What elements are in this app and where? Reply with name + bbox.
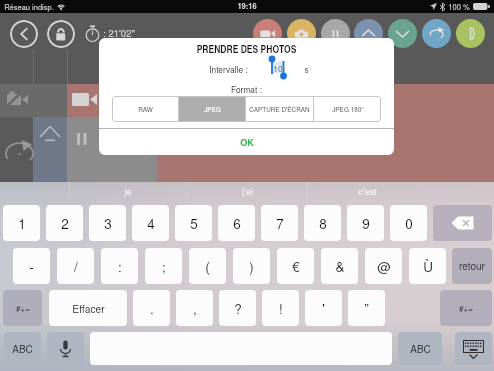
- button[interactable]: RAW: [112, 96, 178, 122]
- button[interactable]: ABC: [4, 332, 41, 365]
- button[interactable]: ”: [348, 290, 385, 326]
- staticText: 8: [319, 214, 327, 233]
- staticText: 6: [233, 214, 241, 233]
- button[interactable]: 9: [347, 205, 384, 241]
- staticText: 5: [190, 214, 198, 233]
- button[interactable]: 4: [132, 205, 169, 241]
- staticText: je: [124, 185, 132, 198]
- staticText: Ù: [423, 257, 433, 276]
- staticText: 0: [405, 214, 413, 233]
- staticText: ): [249, 257, 254, 276]
- staticText: ABC: [410, 342, 431, 356]
- button[interactable]: 7: [261, 205, 298, 241]
- staticText: Effacer: [72, 301, 105, 316]
- button[interactable]: Hide keyboard: [455, 332, 492, 365]
- button[interactable]: JPEG 180°: [314, 96, 381, 122]
- staticText: Format :: [99, 83, 394, 95]
- staticText: 19:16: [237, 1, 257, 12]
- staticText: €: [292, 257, 300, 276]
- staticText: j'ai: [242, 185, 253, 198]
- button[interactable]: ?: [219, 290, 256, 326]
- staticText: -: [29, 257, 34, 276]
- button[interactable]: Effacer: [49, 290, 127, 326]
- button[interactable]: &: [321, 248, 358, 284]
- staticText: ': [322, 299, 325, 318]
- staticText: /: [74, 257, 78, 276]
- staticText: 7: [276, 214, 284, 233]
- button[interactable]: ABC: [398, 332, 442, 365]
- staticText: 3: [104, 214, 112, 233]
- staticText: Intervalle :: [209, 63, 248, 75]
- staticText: OK: [240, 136, 254, 149]
- staticText: c'est: [358, 185, 377, 198]
- button[interactable]: 8: [304, 205, 341, 241]
- button[interactable]: OK: [99, 129, 394, 155]
- button[interactable]: Move up: [354, 19, 383, 48]
- button[interactable]: 3: [89, 205, 126, 241]
- button[interactable]: Night mode: [456, 19, 485, 48]
- button[interactable]: -: [13, 248, 50, 284]
- staticText: 2: [61, 214, 69, 233]
- button[interactable]: Lock: [47, 20, 75, 48]
- staticText: RAW: [138, 105, 153, 114]
- staticText: CAPTURE D'ÉCRAN: [249, 105, 310, 114]
- staticText: #+=: [459, 303, 473, 314]
- button[interactable]: #+=: [3, 290, 42, 326]
- button[interactable]: Take photo: [287, 19, 316, 48]
- staticText: : 21'02": [103, 26, 135, 40]
- button[interactable]: Pause: [321, 19, 350, 48]
- staticText: retour: [459, 259, 485, 273]
- button[interactable]: Redo: [422, 19, 451, 48]
- staticText: 4: [147, 214, 155, 233]
- button[interactable]: !: [262, 290, 299, 326]
- button[interactable]: c'est: [308, 182, 427, 200]
- button[interactable]: .: [133, 290, 170, 326]
- staticText: 10: [273, 62, 283, 73]
- button[interactable]: CAPTURE D'ÉCRAN: [246, 96, 313, 122]
- staticText: ABC: [12, 342, 33, 356]
- staticText: 1: [18, 214, 26, 233]
- staticText: ,: [193, 299, 197, 318]
- button[interactable]: @: [365, 248, 402, 284]
- button[interactable]: Dictate: [47, 332, 84, 365]
- staticText: 9: [362, 214, 370, 233]
- staticText: #+=: [16, 303, 30, 314]
- staticText: JPEG 180°: [332, 105, 364, 114]
- staticText: Réseau indisp.: [4, 1, 54, 12]
- button[interactable]: 6: [218, 205, 255, 241]
- staticText: ”: [364, 299, 369, 318]
- button[interactable]: (: [189, 248, 226, 284]
- button[interactable]: Record video: [253, 19, 282, 48]
- button[interactable]: Delete: [433, 205, 492, 241]
- button[interactable]: je: [70, 182, 186, 200]
- button[interactable]: ,: [176, 290, 213, 326]
- staticText: &: [335, 257, 345, 276]
- button[interactable]: 5: [175, 205, 212, 241]
- button[interactable]: Back: [10, 20, 38, 48]
- button[interactable]: ': [305, 290, 342, 326]
- button[interactable]: €: [277, 248, 314, 284]
- button[interactable]: 2: [46, 205, 83, 241]
- button[interactable]: JPEG: [179, 96, 245, 122]
- button[interactable]: 0: [390, 205, 427, 241]
- staticText: .: [150, 299, 154, 318]
- button[interactable]: j'ai: [187, 182, 307, 200]
- button[interactable]: ;: [145, 248, 182, 284]
- staticText: s: [304, 63, 309, 75]
- button[interactable]: Ù: [409, 248, 446, 284]
- button[interactable]: retour: [452, 248, 492, 284]
- button[interactable]: #+=: [440, 290, 492, 326]
- staticText: PRENDRE DES PHOTOS: [99, 42, 394, 57]
- staticText: (: [205, 257, 210, 276]
- staticText: ?: [234, 299, 242, 318]
- staticText: :: [118, 257, 122, 276]
- button[interactable]: ): [233, 248, 270, 284]
- staticText: !: [279, 299, 283, 318]
- button[interactable]: :: [101, 248, 138, 284]
- staticText: JPEG: [204, 105, 221, 114]
- staticText: @: [377, 257, 391, 276]
- button[interactable]: Move down: [388, 19, 417, 48]
- button[interactable]: 1: [3, 205, 40, 241]
- button[interactable]: /: [57, 248, 94, 284]
